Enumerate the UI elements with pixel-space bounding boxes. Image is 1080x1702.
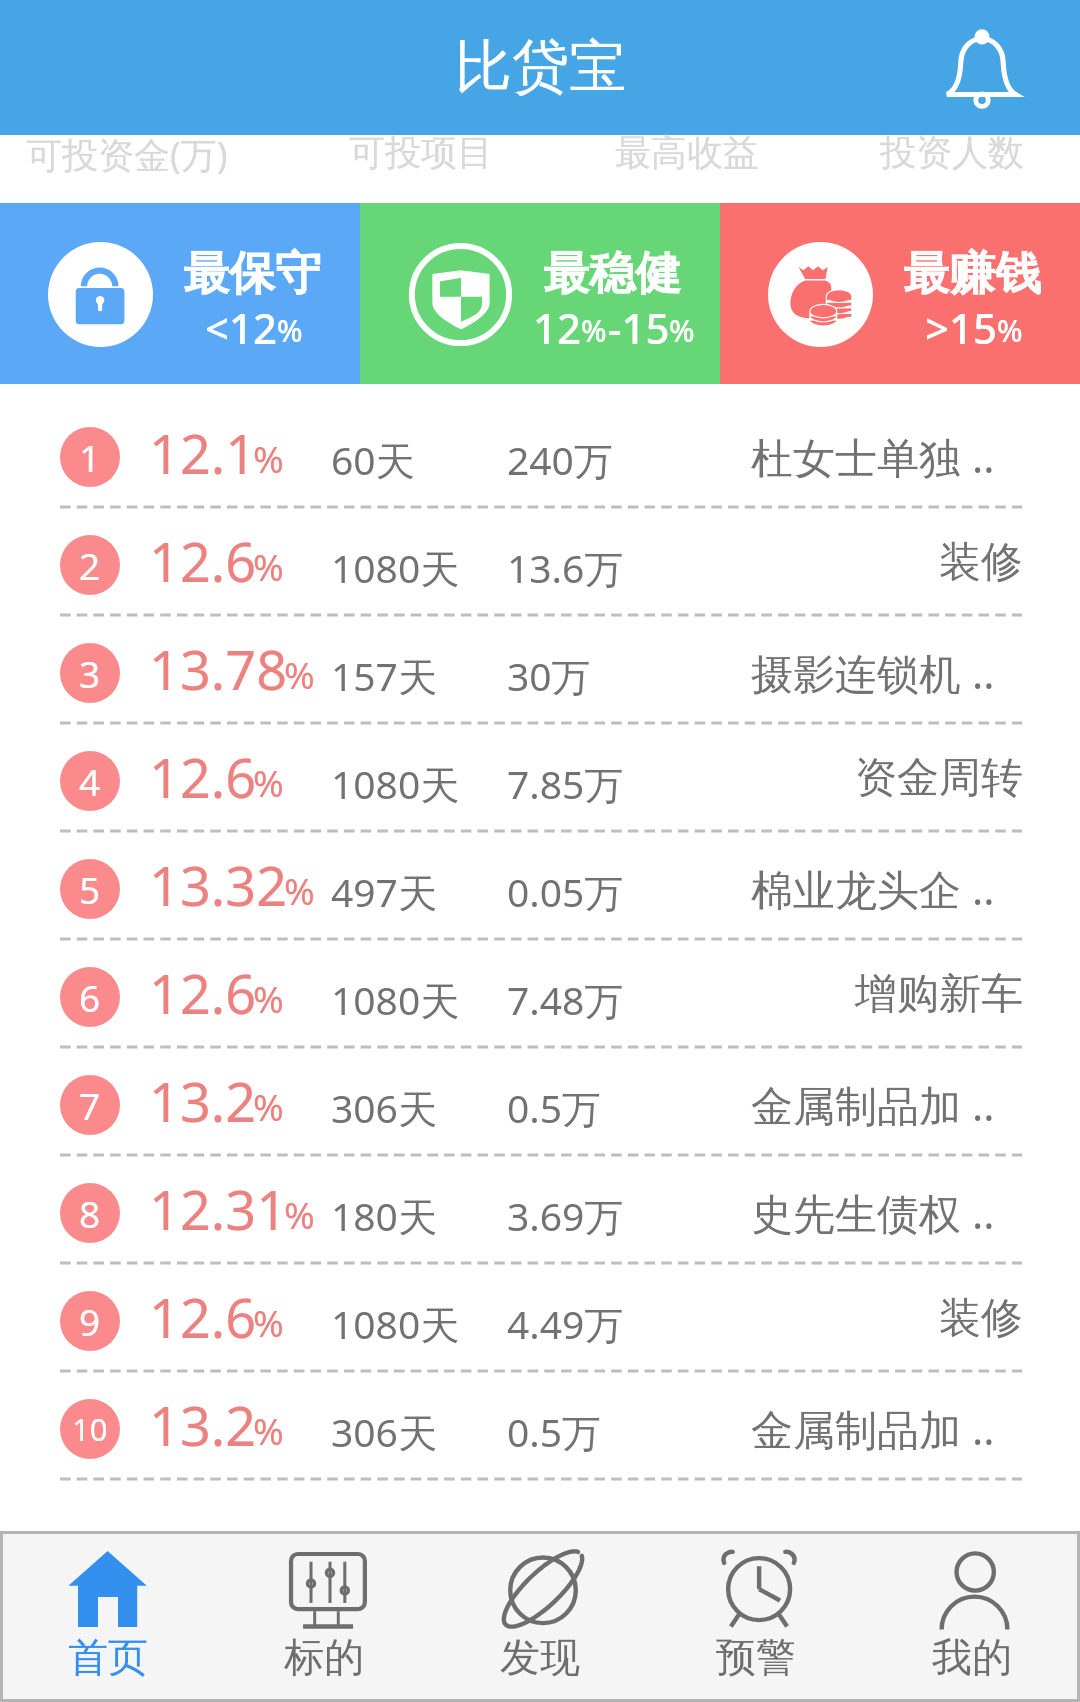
staticText: % bbox=[277, 310, 303, 351]
staticText: 1 bbox=[79, 432, 101, 482]
staticText: % bbox=[581, 310, 607, 351]
staticText: 6 bbox=[79, 972, 101, 1022]
staticText: -15 bbox=[608, 299, 670, 356]
staticText: <12 bbox=[205, 299, 278, 356]
button[interactable]: 7 bbox=[0, 1051, 1080, 1159]
staticText: % bbox=[284, 1189, 315, 1239]
staticText: % bbox=[284, 865, 315, 915]
staticText: 1080天 bbox=[331, 757, 460, 810]
staticText: 8 bbox=[79, 1188, 101, 1238]
staticText: 1080天 bbox=[331, 1297, 460, 1350]
staticText: % bbox=[253, 1405, 284, 1455]
button[interactable]: 标的 bbox=[216, 1531, 432, 1702]
staticText: 5 bbox=[79, 864, 101, 914]
staticText: % bbox=[253, 1297, 284, 1347]
button[interactable]: 5 bbox=[0, 835, 1080, 943]
button[interactable]: 最赚钱 bbox=[720, 203, 1080, 384]
staticText: 首页 bbox=[68, 1632, 148, 1682]
staticText: 240万 bbox=[507, 433, 613, 486]
staticText: 1080天 bbox=[331, 973, 460, 1026]
staticText: % bbox=[997, 310, 1023, 351]
button[interactable]: 最稳健 bbox=[360, 203, 720, 384]
staticText: 4.49万 bbox=[507, 1297, 624, 1350]
staticText: 最赚钱 bbox=[903, 245, 1041, 303]
button[interactable]: 1 bbox=[0, 403, 1080, 511]
staticText: 13.2 bbox=[149, 1388, 257, 1462]
staticText: 最保守 bbox=[183, 245, 321, 303]
staticText: 我的 bbox=[932, 1632, 1012, 1682]
button[interactable]: 8 bbox=[0, 1159, 1080, 1267]
staticText: 13.78 bbox=[149, 632, 288, 706]
staticText: 装修 bbox=[939, 1292, 1023, 1345]
staticText: 12.31 bbox=[149, 1172, 288, 1246]
staticText: % bbox=[253, 973, 284, 1023]
staticText: 资金周转 bbox=[855, 752, 1023, 805]
staticText: 7 bbox=[79, 1080, 101, 1130]
staticText: 306天 bbox=[331, 1405, 437, 1458]
staticText: 史先生债权 .. bbox=[751, 1184, 995, 1241]
staticText: % bbox=[253, 1081, 284, 1131]
staticText: 棉业龙头企 .. bbox=[751, 860, 995, 917]
staticText: 比贷宝 bbox=[455, 31, 626, 103]
staticText: % bbox=[253, 541, 284, 591]
button[interactable]: 2 bbox=[0, 511, 1080, 619]
staticText: % bbox=[253, 433, 284, 483]
staticText: 60天 bbox=[331, 433, 415, 486]
staticText: 10 bbox=[72, 1408, 108, 1450]
staticText: 最稳健 bbox=[543, 245, 681, 303]
staticText: 0.05万 bbox=[507, 865, 624, 918]
staticText: 杜女士单独 .. bbox=[751, 428, 995, 485]
button[interactable]: 4 bbox=[0, 727, 1080, 835]
staticText: 标的 bbox=[284, 1632, 364, 1682]
staticText: 金属制品加 .. bbox=[751, 1400, 995, 1457]
button[interactable]: 首页 bbox=[0, 1531, 216, 1702]
staticText: 0.5万 bbox=[507, 1081, 602, 1134]
staticText: 最高收益 bbox=[615, 130, 759, 175]
staticText: 1080天 bbox=[331, 541, 460, 594]
staticText: 497天 bbox=[331, 865, 437, 918]
staticText: 投资人数 bbox=[880, 130, 1024, 175]
staticText: 发现 bbox=[500, 1632, 580, 1682]
staticText: % bbox=[253, 757, 284, 807]
staticText: 12.6 bbox=[149, 1280, 257, 1354]
staticText: 2 bbox=[79, 540, 101, 590]
button[interactable]: 6 bbox=[0, 943, 1080, 1051]
staticText: 0.5万 bbox=[507, 1405, 602, 1458]
staticText: 3 bbox=[79, 648, 101, 698]
staticText: 12.1 bbox=[149, 416, 257, 490]
staticText: 12.6 bbox=[149, 740, 257, 814]
staticText: 13.6万 bbox=[507, 541, 624, 594]
staticText: 9 bbox=[79, 1296, 101, 1346]
button[interactable]: 我的 bbox=[864, 1531, 1080, 1702]
button[interactable]: Notifications bbox=[944, 29, 1020, 107]
staticText: 可投项目 bbox=[349, 130, 493, 175]
button[interactable]: 10 bbox=[0, 1375, 1080, 1483]
staticText: 306天 bbox=[331, 1081, 437, 1134]
staticText: 7.48万 bbox=[507, 973, 624, 1026]
staticText: >15 bbox=[925, 299, 998, 356]
staticText: 装修 bbox=[939, 536, 1023, 589]
staticText: 金属制品加 .. bbox=[751, 1076, 995, 1133]
staticText: 12.6 bbox=[149, 956, 257, 1030]
button[interactable]: 发现 bbox=[432, 1531, 648, 1702]
button[interactable]: 最保守 bbox=[0, 203, 360, 384]
staticText: 13.32 bbox=[149, 848, 288, 922]
staticText: 摄影连锁机 .. bbox=[751, 644, 995, 701]
staticText: 4 bbox=[79, 756, 101, 806]
button[interactable]: 预警 bbox=[648, 1531, 864, 1702]
staticText: % bbox=[284, 649, 315, 699]
button[interactable]: 9 bbox=[0, 1267, 1080, 1375]
staticText: % bbox=[669, 310, 695, 351]
staticText: 12.6 bbox=[149, 524, 257, 598]
staticText: 180天 bbox=[331, 1189, 437, 1242]
staticText: 30万 bbox=[507, 649, 591, 702]
staticText: 7.85万 bbox=[507, 757, 624, 810]
staticText: 157天 bbox=[331, 649, 437, 702]
staticText: 可投资金(万) bbox=[26, 130, 228, 179]
staticText: 3.69万 bbox=[507, 1189, 624, 1242]
staticText: 增购新车 bbox=[855, 968, 1023, 1021]
staticText: 12 bbox=[533, 299, 582, 356]
staticText: 预警 bbox=[716, 1632, 796, 1682]
staticText: 13.2 bbox=[149, 1064, 257, 1138]
button[interactable]: 3 bbox=[0, 619, 1080, 727]
